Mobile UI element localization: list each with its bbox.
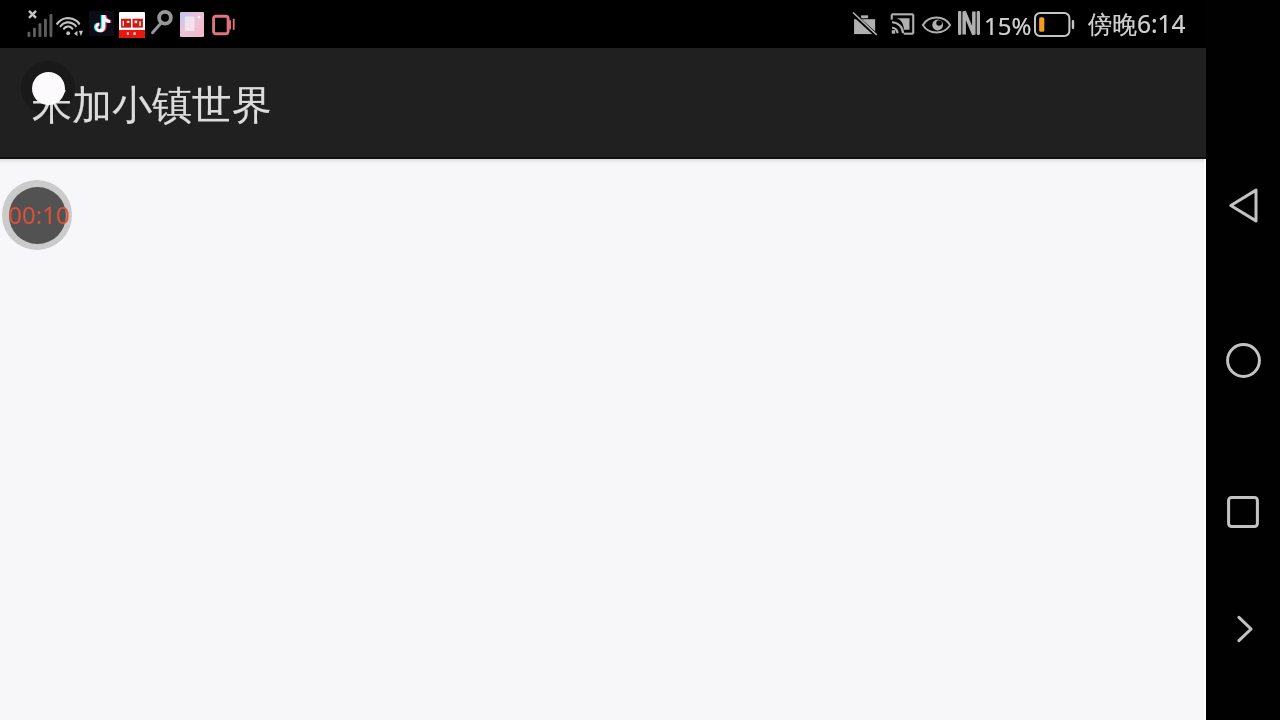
staticText: 00:10 <box>8 198 70 231</box>
button[interactable]: Recording timer <box>2 180 72 250</box>
button[interactable]: Recent apps <box>1206 482 1280 542</box>
staticText: 傍晚6:14 <box>1088 7 1186 40</box>
button[interactable]: Home <box>1206 330 1280 390</box>
button[interactable]: Back <box>1207 175 1280 235</box>
staticText: 15% <box>984 9 1032 42</box>
staticText: 米加小镇世界 <box>32 80 272 130</box>
button[interactable]: Expand navigation bar <box>1208 599 1280 659</box>
